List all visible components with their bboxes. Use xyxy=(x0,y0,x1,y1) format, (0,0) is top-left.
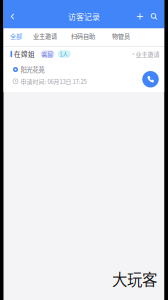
staticText: 大玩客 xyxy=(112,267,157,289)
staticText: 在嫦姐 xyxy=(14,49,35,59)
button[interactable]: Add xyxy=(133,7,146,25)
staticText: 业主邀请 xyxy=(33,31,57,40)
staticText: 全部 xyxy=(10,31,22,40)
staticText: 高层 xyxy=(42,50,54,58)
staticText: 大玩客 xyxy=(113,268,158,290)
staticText: 1人 xyxy=(60,50,69,58)
button[interactable]: 全部 xyxy=(10,28,22,43)
button[interactable]: 扫码自助 xyxy=(71,28,95,43)
staticText: 业主邀请 xyxy=(135,50,159,58)
staticText: 扫码自助 xyxy=(71,31,95,40)
staticText: 物管员 xyxy=(112,31,130,40)
staticText: 阳光花苑 xyxy=(20,65,44,74)
button[interactable]: 物管员 xyxy=(112,28,130,43)
staticText: 大玩客 xyxy=(112,268,157,290)
button[interactable]: 业主邀请 xyxy=(33,28,57,43)
button[interactable]: Back xyxy=(5,7,19,25)
button[interactable]: Call xyxy=(139,68,162,91)
staticText: 访客记录 xyxy=(68,11,100,22)
staticText: 申请时间: 06月13日 17:25 xyxy=(20,77,86,86)
staticText: 大玩客 xyxy=(111,268,156,290)
button[interactable]: 在嫦姐 xyxy=(3,47,164,92)
button[interactable]: Search xyxy=(147,7,160,25)
staticText: 大玩客 xyxy=(112,268,157,291)
